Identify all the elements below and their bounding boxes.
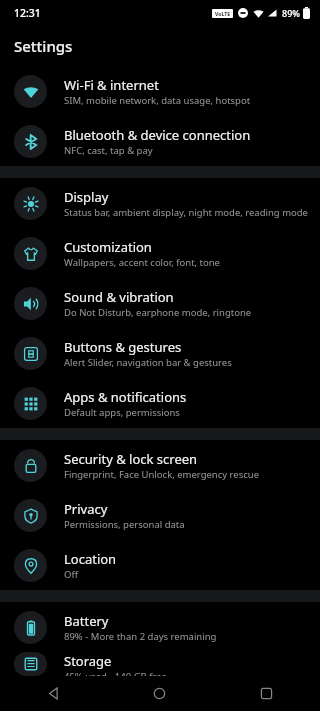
staticText: 45% used - 140 GB free <box>64 670 167 676</box>
staticText: Status bar, ambient display, night mode,… <box>64 206 308 219</box>
button[interactable]: Location <box>0 540 320 590</box>
staticText: Bluetooth & device connection <box>64 126 251 144</box>
staticText: Settings <box>14 36 73 56</box>
button[interactable]: Privacy <box>0 490 320 540</box>
button[interactable]: Apps & notifications <box>0 378 320 428</box>
button[interactable]: Battery <box>0 602 320 652</box>
staticText: SIM, mobile network, data usage, hotspot <box>64 94 251 107</box>
button[interactable]: Back <box>0 676 106 711</box>
button[interactable]: Sound & vibration <box>0 278 320 328</box>
staticText: Apps & notifications <box>64 388 187 406</box>
button[interactable]: Bluetooth & device connection <box>0 116 320 166</box>
staticText: Fingerprint, Face Unlock, emergency resc… <box>64 468 260 481</box>
staticText: Alert Slider, navigation bar & gestures <box>64 356 232 369</box>
button[interactable]: Display <box>0 178 320 228</box>
button[interactable]: Storage <box>0 652 320 676</box>
staticText: NFC, cast, tap & pay <box>64 144 153 157</box>
staticText: Security & lock screen <box>64 450 198 468</box>
button[interactable]: Buttons & gestures <box>0 328 320 378</box>
staticText: Permissions, personal data <box>64 518 185 531</box>
staticText: Buttons & gestures <box>64 338 182 356</box>
staticText: VoLTE <box>215 10 231 17</box>
button[interactable]: Wi-Fi & internet <box>0 66 320 116</box>
staticText: Customization <box>64 238 152 256</box>
staticText: Do Not Disturb, earphone mode, ringtone <box>64 306 252 319</box>
staticText: 89% - More than 2 days remaining <box>64 630 217 643</box>
staticText: Battery <box>64 612 109 630</box>
staticText: Privacy <box>64 500 108 518</box>
staticText: Storage <box>64 652 112 670</box>
button[interactable]: Customization <box>0 228 320 278</box>
staticText: 12:31 <box>14 6 41 20</box>
staticText: Location <box>64 550 117 568</box>
staticText: Wallpapers, accent color, font, tone <box>64 256 220 269</box>
staticText: Off <box>64 568 78 581</box>
staticText: Wi-Fi & internet <box>64 76 159 94</box>
staticText: Default apps, permissions <box>64 406 180 419</box>
button[interactable]: Recent apps <box>213 676 320 711</box>
staticText: 89% <box>282 7 300 19</box>
staticText: Sound & vibration <box>64 288 174 306</box>
button[interactable]: Security & lock screen <box>0 440 320 490</box>
staticText: Display <box>64 188 109 206</box>
button[interactable]: Home <box>106 676 213 711</box>
